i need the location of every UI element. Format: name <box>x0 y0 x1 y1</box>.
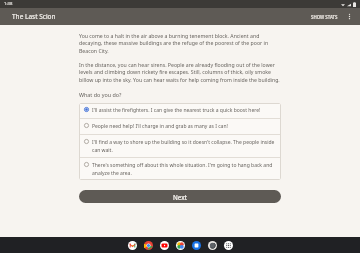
button[interactable]: More options <box>342 9 357 24</box>
button[interactable]: Gmail <box>127 240 138 251</box>
staticText: 1:38 <box>4 1 13 7</box>
button[interactable]: Files <box>191 240 202 251</box>
button[interactable]: There's something off about this whole s… <box>79 158 281 180</box>
staticText: I'll assist the firefighters. I can give… <box>92 107 261 114</box>
button[interactable]: Recent app <box>207 240 218 251</box>
button[interactable]: SHOW STATS <box>307 11 342 23</box>
staticText: In the distance, you can hear sirens. Pe… <box>79 61 281 84</box>
button[interactable]: People need help! I'll charge in and gra… <box>79 119 281 134</box>
staticText: Next <box>173 193 187 201</box>
button[interactable]: Chrome <box>143 240 154 251</box>
button[interactable]: Next <box>79 190 281 203</box>
staticText: The Last Scion <box>12 12 56 21</box>
button[interactable]: YouTube <box>159 240 170 251</box>
staticText: SHOW STATS <box>311 14 338 20</box>
staticText: There's something off about this whole s… <box>92 162 276 176</box>
button[interactable]: I'll assist the firefighters. I can give… <box>79 103 281 118</box>
staticText: You come to a halt in the air above a bu… <box>79 32 281 55</box>
staticText: People need help! I'll charge in and gra… <box>92 123 228 130</box>
staticText: I'll find a way to shore up the building… <box>92 139 276 153</box>
button[interactable]: Photos <box>175 240 186 251</box>
button[interactable]: I'll find a way to shore up the building… <box>79 135 281 157</box>
button[interactable]: All apps <box>223 240 234 251</box>
staticText: What do you do? <box>79 91 122 98</box>
